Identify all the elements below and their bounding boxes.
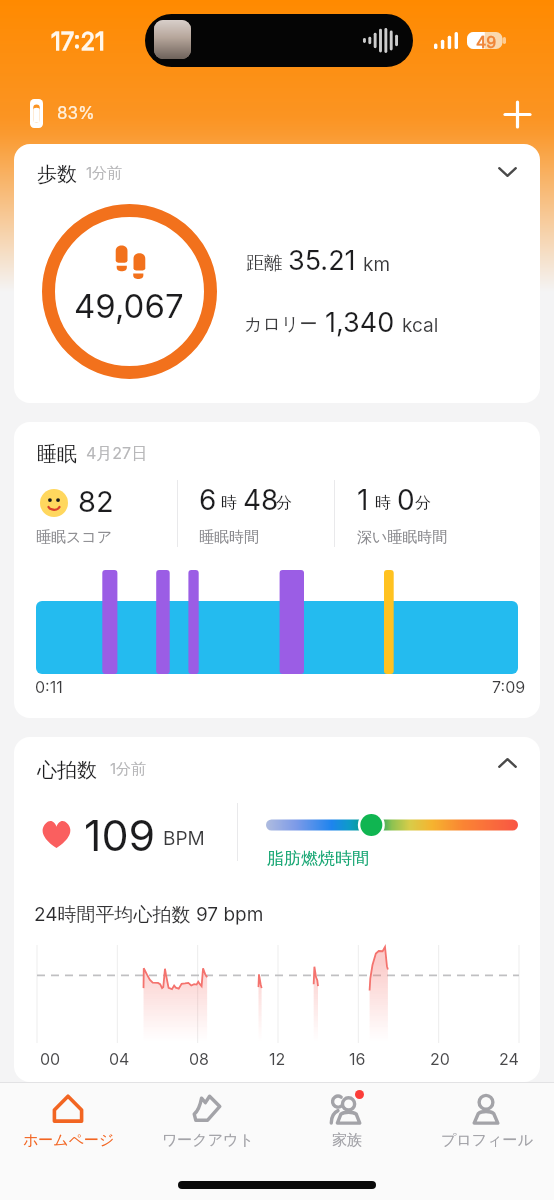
staticText: 04: [109, 1049, 130, 1068]
button[interactable]: Add: [494, 91, 540, 137]
staticText: 家族: [332, 1131, 362, 1150]
staticText: 1,340: [325, 306, 395, 339]
staticText: ホームページ: [23, 1131, 115, 1150]
staticText: 83%: [57, 103, 95, 124]
staticText: 睡眠スコア: [36, 528, 113, 547]
staticText: BPM: [163, 827, 205, 850]
staticText: 49: [476, 32, 497, 51]
staticText: 1分前: [86, 163, 123, 182]
staticText: kcal: [402, 314, 439, 337]
staticText: 24時間平均心拍数 97 bpm: [34, 903, 264, 927]
button[interactable]: プロフィール: [417, 1082, 554, 1200]
staticText: 分: [276, 493, 292, 513]
button[interactable]: 歩数: [14, 144, 540, 403]
button[interactable]: 心拍数: [14, 737, 540, 1082]
staticText: 00: [40, 1049, 61, 1068]
staticText: 脂肪燃焼時間: [267, 848, 369, 869]
staticText: 心拍数: [37, 758, 97, 783]
button[interactable]: ホームページ: [0, 1082, 138, 1200]
button[interactable]: ワークアウト: [138, 1082, 277, 1200]
staticText: プロフィール: [441, 1131, 533, 1150]
staticText: ワークアウト: [162, 1131, 254, 1150]
staticText: カロリー: [244, 313, 318, 336]
staticText: 睡眠時間: [199, 528, 259, 547]
staticText: 109: [84, 809, 156, 861]
staticText: 分: [415, 493, 431, 513]
staticText: 82: [78, 484, 114, 519]
staticText: 睡眠: [37, 442, 77, 467]
button[interactable]: Collapse heart rate: [487, 743, 527, 783]
staticText: 時: [375, 493, 391, 513]
staticText: 距離: [246, 252, 282, 275]
staticText: 深い睡眠時間: [357, 528, 448, 547]
button[interactable]: 睡眠: [14, 422, 540, 718]
button[interactable]: 家族: [277, 1082, 416, 1200]
staticText: 20: [430, 1049, 450, 1068]
staticText: 0: [397, 483, 415, 517]
staticText: 7:09: [492, 677, 526, 696]
staticText: 08: [189, 1049, 209, 1068]
button[interactable]: Collapse: [487, 152, 527, 192]
staticText: 時: [221, 493, 237, 513]
staticText: 4月27日: [86, 443, 148, 463]
staticText: 1分前: [110, 759, 147, 778]
staticText: 0:11: [35, 677, 63, 696]
staticText: 1: [357, 483, 369, 517]
staticText: 49,067: [74, 286, 184, 326]
staticText: 16: [349, 1049, 366, 1068]
staticText: 35.21: [288, 244, 356, 277]
staticText: 17:21: [51, 27, 105, 56]
staticText: 12: [269, 1049, 286, 1068]
staticText: 48: [243, 483, 279, 517]
staticText: km: [363, 253, 391, 276]
staticText: 6: [199, 483, 217, 517]
staticText: 24: [499, 1049, 519, 1068]
staticText: 歩数: [37, 162, 77, 187]
